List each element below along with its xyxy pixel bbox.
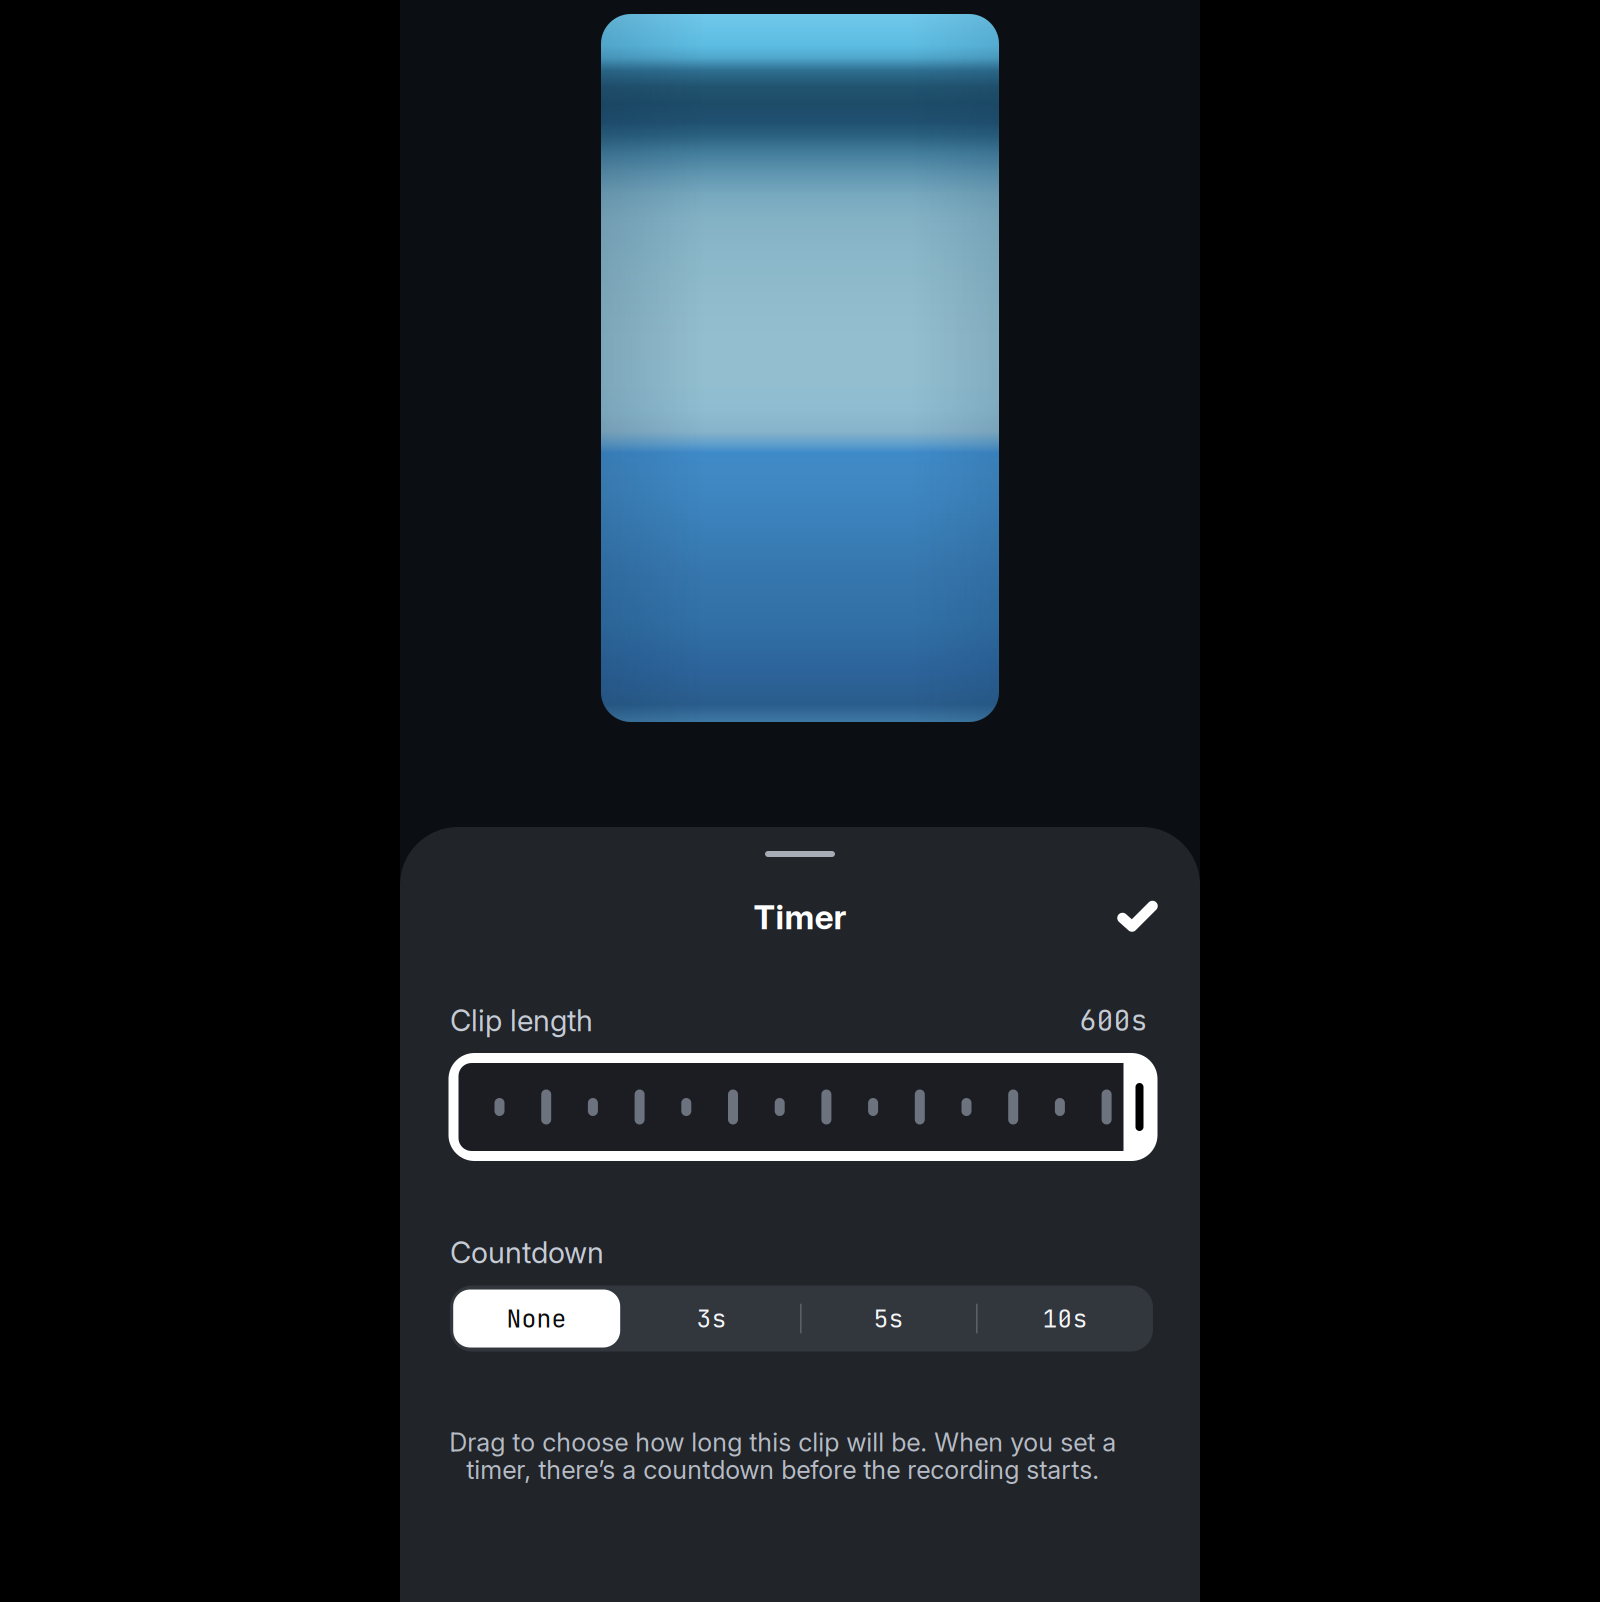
staticText: Clip length bbox=[450, 1003, 593, 1038]
staticText: Drag to choose how long this clip will b… bbox=[449, 1427, 1116, 1485]
staticText: None bbox=[506, 1302, 566, 1335]
button[interactable]: 10s bbox=[977, 1285, 1153, 1351]
staticText: Timer bbox=[753, 897, 846, 937]
button[interactable]: None bbox=[450, 1285, 623, 1351]
staticText: 5s bbox=[873, 1302, 903, 1335]
button[interactable]: 3s bbox=[623, 1285, 800, 1351]
staticText: 3s bbox=[696, 1302, 726, 1335]
staticText: 10s bbox=[1042, 1302, 1087, 1335]
button[interactable]: Clip length bbox=[448, 1053, 1157, 1161]
staticText: Countdown bbox=[450, 1235, 604, 1270]
button[interactable]: Done bbox=[1094, 873, 1180, 959]
button[interactable]: 5s bbox=[800, 1285, 977, 1351]
staticText: 600s bbox=[1079, 1002, 1147, 1039]
